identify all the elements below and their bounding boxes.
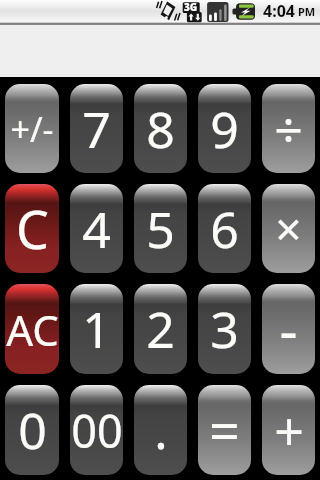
staticText: =: [209, 393, 240, 467]
button[interactable]: 6: [198, 184, 251, 273]
button[interactable]: 5: [134, 184, 187, 273]
staticText: 3G: [184, 0, 198, 14]
staticText: -: [279, 291, 298, 367]
button[interactable]: 00: [70, 385, 123, 475]
staticText: 4: [82, 195, 111, 263]
button[interactable]: Equals: [198, 385, 251, 475]
staticText: 3: [210, 295, 239, 363]
staticText: C: [16, 193, 49, 264]
button[interactable]: C: [5, 184, 59, 273]
staticText: 0: [18, 396, 47, 464]
button[interactable]: 8: [134, 84, 187, 173]
staticText: 8: [146, 95, 175, 163]
staticText: 7: [82, 95, 111, 163]
button[interactable]: 4: [70, 184, 123, 273]
button[interactable]: Minus: [262, 284, 315, 374]
button[interactable]: Divide: [262, 84, 315, 173]
staticText: 5: [146, 195, 175, 263]
staticText: 00: [71, 400, 123, 461]
button[interactable]: 1: [70, 284, 123, 374]
button[interactable]: Multiply: [262, 184, 315, 273]
staticText: 9: [210, 95, 239, 163]
staticText: ×: [275, 197, 302, 260]
button[interactable]: 0: [5, 385, 59, 475]
button[interactable]: +/-: [5, 84, 59, 173]
staticText: 6: [210, 195, 239, 263]
button[interactable]: 2: [134, 284, 187, 374]
staticText: .: [154, 396, 168, 464]
staticText: 1: [82, 295, 111, 363]
staticText: ÷: [274, 95, 303, 163]
staticText: 2: [146, 295, 175, 363]
button[interactable]: 9: [198, 84, 251, 173]
button[interactable]: 3: [198, 284, 251, 374]
button[interactable]: 7: [70, 84, 123, 173]
button[interactable]: Plus: [262, 385, 315, 475]
staticText: +: [274, 395, 304, 466]
button[interactable]: AC: [5, 284, 59, 374]
button[interactable]: .: [134, 385, 187, 475]
staticText: 4:04: [263, 0, 295, 22]
staticText: PM: [298, 4, 316, 19]
staticText: +/-: [10, 106, 54, 152]
staticText: AC: [6, 301, 59, 358]
